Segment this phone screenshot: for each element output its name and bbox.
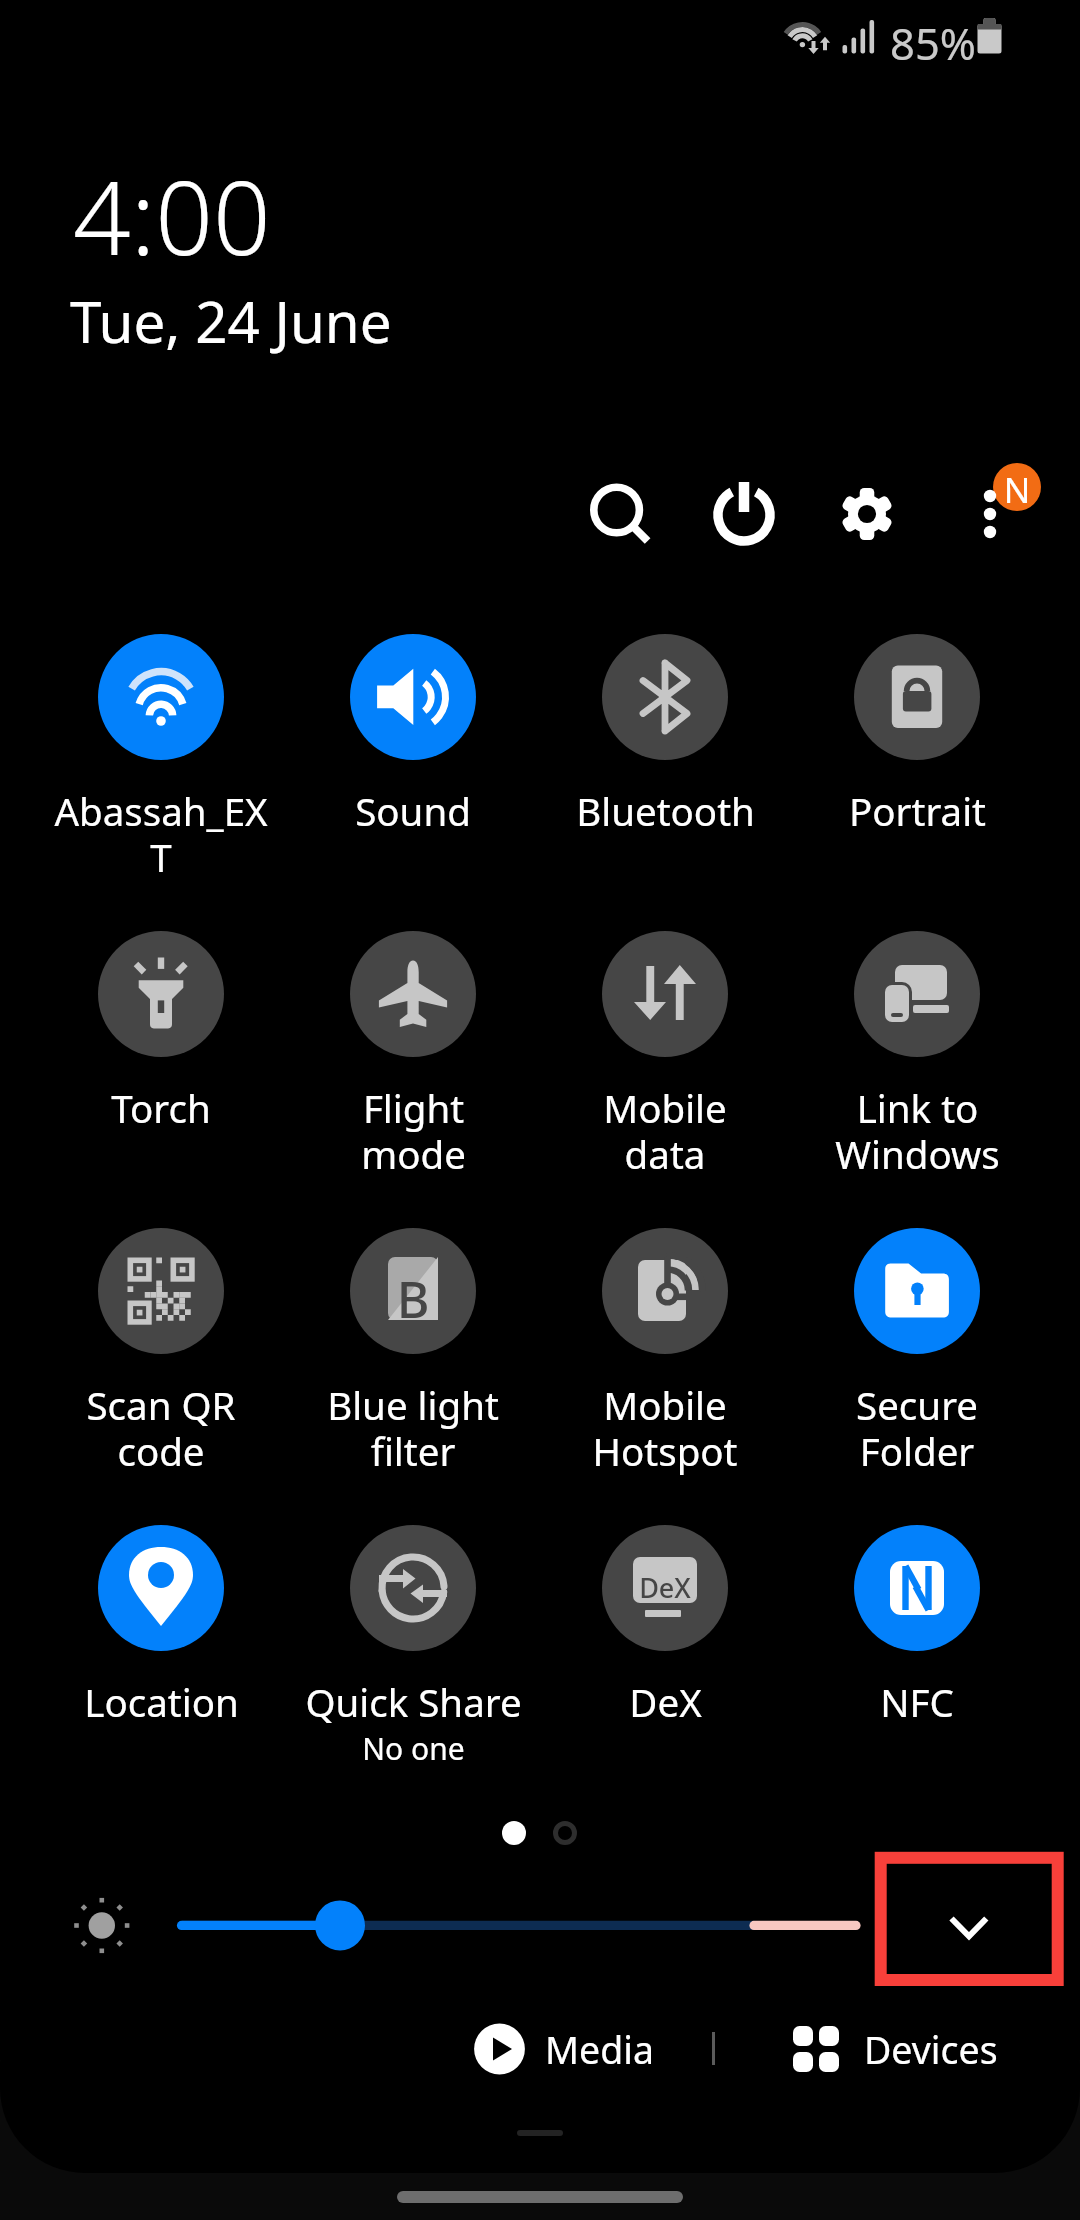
staticText: Sound <box>355 785 471 837</box>
staticText: N <box>1003 466 1031 514</box>
staticText: Media <box>545 2024 654 2075</box>
button[interactable]: Settings <box>819 462 915 562</box>
staticText: DeX <box>635 1569 695 1606</box>
button[interactable]: Page 2 <box>545 1813 585 1853</box>
button[interactable]: Devices <box>792 2016 998 2082</box>
button[interactable]: Search <box>570 462 666 562</box>
staticText: Flight mode <box>361 1082 466 1180</box>
staticText: Location <box>84 1676 239 1728</box>
staticText: Scan QR code <box>86 1379 236 1477</box>
button[interactable]: DeX <box>545 1518 785 1718</box>
staticText: 4:00 <box>73 147 271 285</box>
staticText: Quick Share <box>305 1676 522 1728</box>
button[interactable]: Quick Share <box>293 1518 533 1718</box>
button[interactable]: More options <box>952 450 1062 562</box>
button[interactable]: Expand quick settings <box>881 1858 1057 1980</box>
button[interactable]: Power off <box>696 462 792 562</box>
staticText: DeX <box>629 1676 702 1728</box>
button[interactable]: Flight mode <box>293 924 533 1124</box>
button[interactable]: Scan QR code <box>41 1221 281 1421</box>
button[interactable]: Torch <box>41 924 281 1124</box>
staticText: Mobile data <box>603 1082 727 1180</box>
staticText: Link to Windows <box>835 1082 1000 1180</box>
staticText: B <box>389 1265 437 1333</box>
button[interactable]: Mobile data <box>545 924 785 1124</box>
button[interactable]: NFC <box>797 1518 1037 1718</box>
staticText: Torch <box>111 1082 211 1134</box>
staticText: Mobile Hotspot <box>592 1379 738 1477</box>
button[interactable]: Portrait <box>797 627 1037 827</box>
button[interactable]: Secure Folder <box>797 1221 1037 1421</box>
staticText: Secure Folder <box>856 1379 978 1477</box>
button[interactable]: Mobile Hotspot <box>545 1221 785 1421</box>
staticText: 85% <box>890 13 976 72</box>
staticText: No one <box>362 1728 465 1769</box>
button[interactable]: Abassah_EX T <box>41 627 281 827</box>
staticText: NFC <box>880 1676 954 1728</box>
staticText: Devices <box>864 2024 998 2075</box>
button[interactable]: Sound <box>293 627 533 827</box>
button[interactable]: B <box>293 1221 533 1421</box>
button[interactable]: Brightness <box>160 1886 880 1966</box>
button[interactable]: Media <box>474 2016 654 2082</box>
button[interactable]: Page 1 <box>494 1813 534 1853</box>
staticText: Blue light filter <box>327 1379 499 1477</box>
button[interactable]: Link to Windows <box>797 924 1037 1124</box>
button[interactable]: Location <box>41 1518 281 1718</box>
staticText: Bluetooth <box>576 785 755 837</box>
staticText: Abassah_EX T <box>54 785 268 883</box>
staticText: Portrait <box>849 785 986 837</box>
button[interactable]: Bluetooth <box>545 627 785 827</box>
staticText: Tue, 24 June <box>70 283 392 360</box>
